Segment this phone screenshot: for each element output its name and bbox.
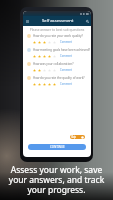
staticText: How do you rate the quality of work? bbox=[33, 76, 85, 80]
button[interactable]: How do you rate your work quality? bbox=[23, 34, 91, 48]
staticText: CONTINUE bbox=[50, 145, 65, 149]
staticText: Assess your work, save your answers, and… bbox=[0, 164, 113, 196]
staticText: Comment bbox=[60, 54, 73, 58]
staticText: Please answer to best suit questions bbox=[23, 28, 91, 32]
staticText: How meeting goals have been achieved? bbox=[33, 48, 91, 52]
button[interactable]: Menu bbox=[24, 18, 30, 24]
staticText: How was your collaboration? bbox=[33, 62, 74, 66]
staticText: How do you rate your work quality? bbox=[33, 34, 83, 38]
button[interactable]: How was your collaboration? bbox=[23, 62, 91, 76]
staticText: Skip bbox=[71, 135, 77, 139]
button[interactable]: Skip bbox=[70, 135, 85, 139]
staticText: Comment bbox=[60, 68, 73, 72]
button[interactable]: How do you rate the quality of work? bbox=[23, 76, 91, 90]
button[interactable]: Search bbox=[84, 18, 90, 24]
button[interactable]: How meeting goals have been achieved? bbox=[23, 48, 91, 62]
staticText: Self assessment bbox=[42, 18, 74, 24]
staticText: Comment bbox=[60, 40, 73, 44]
button[interactable]: CONTINUE bbox=[28, 144, 86, 150]
staticText: Comment bbox=[60, 82, 73, 86]
